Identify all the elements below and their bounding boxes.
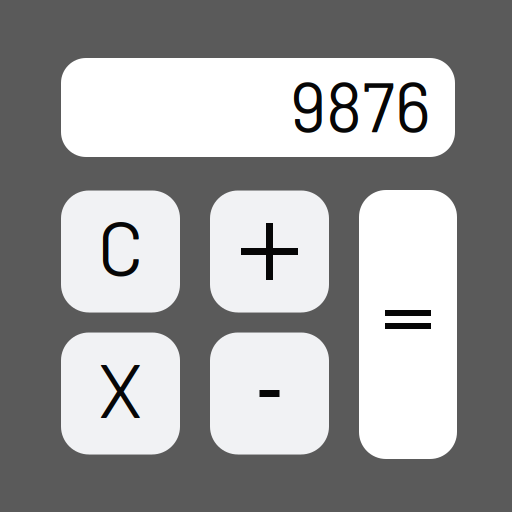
button[interactable]: Equals — [359, 188, 457, 457]
button[interactable]: Display shows 9876 — [61, 58, 455, 157]
staticText: C — [97, 200, 143, 291]
button[interactable]: Add — [210, 190, 329, 312]
button[interactable]: Clear — [61, 190, 180, 312]
staticText: 9876 — [290, 63, 431, 146]
staticText: X — [98, 342, 143, 433]
button[interactable]: Multiply — [61, 332, 180, 454]
button[interactable]: Subtract — [210, 332, 329, 454]
